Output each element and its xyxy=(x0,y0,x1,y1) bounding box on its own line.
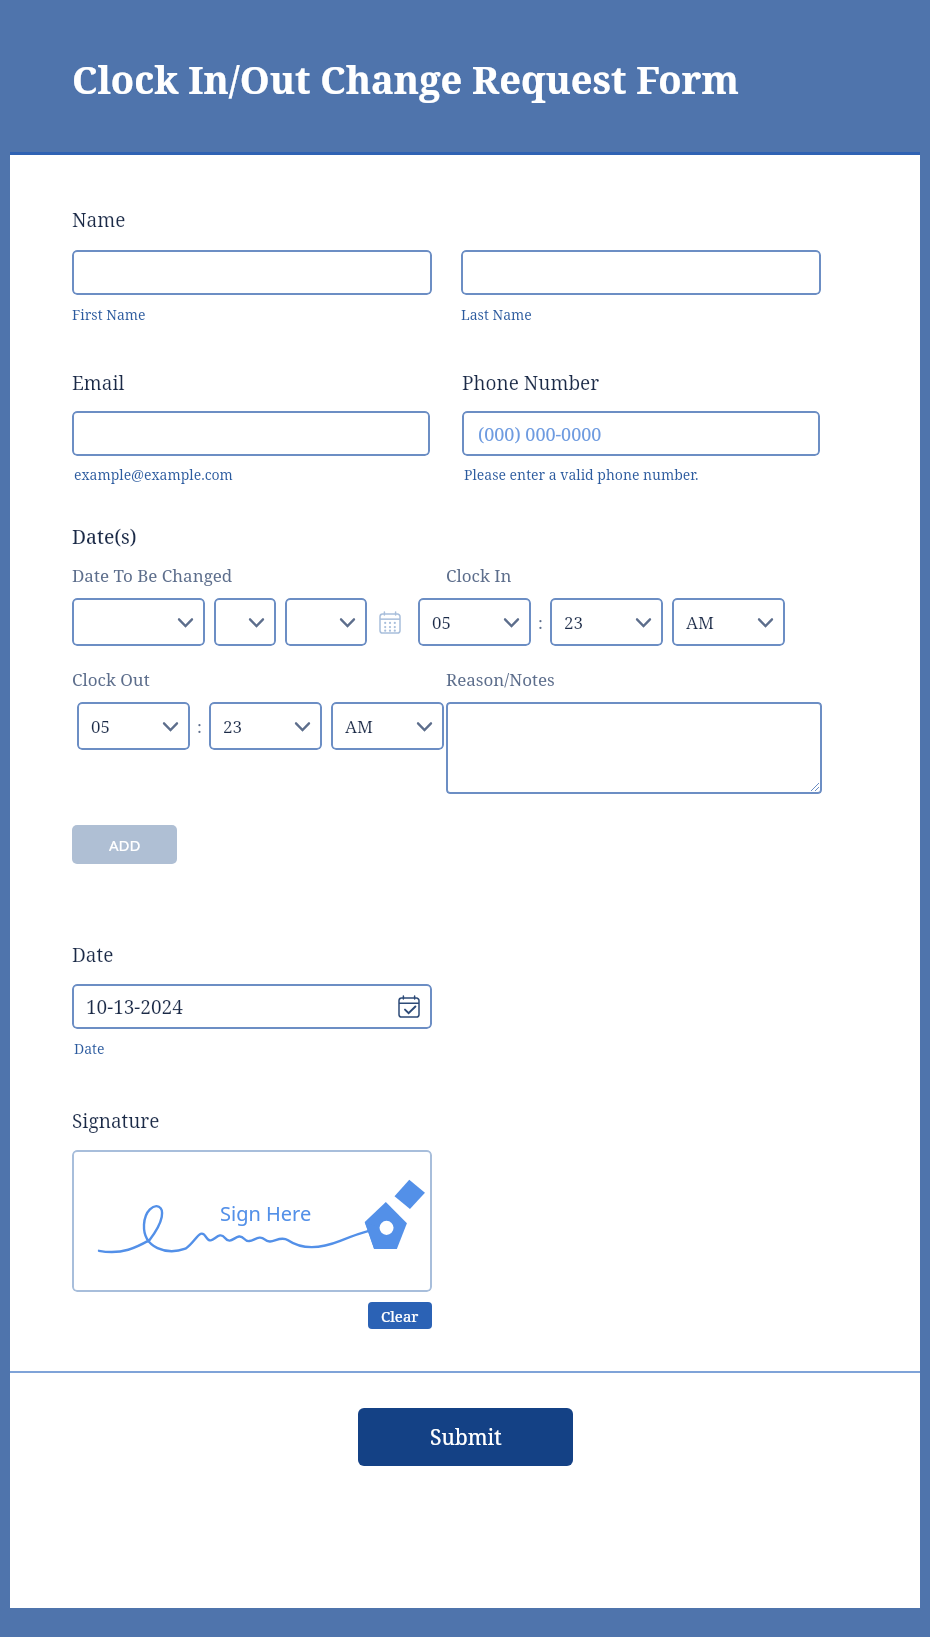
button[interactable] xyxy=(461,250,821,295)
staticText: AM xyxy=(345,715,373,738)
button[interactable]: 23 xyxy=(550,598,663,646)
button[interactable]: Pick date xyxy=(377,609,403,635)
button[interactable] xyxy=(72,411,430,456)
button[interactable]: (000) 000-0000 xyxy=(462,411,820,456)
staticText: 23 xyxy=(564,611,584,634)
staticText: : xyxy=(538,611,543,634)
staticText: Email xyxy=(72,370,125,396)
staticText: Sign Here xyxy=(220,1200,312,1227)
staticText: Date To Be Changed xyxy=(72,564,233,587)
staticText: Phone Number xyxy=(462,370,600,396)
button[interactable]: Submit xyxy=(358,1408,573,1466)
staticText: Date(s) xyxy=(72,524,137,550)
staticText: Clock In xyxy=(446,564,512,587)
button[interactable] xyxy=(72,250,432,295)
staticText: Signature xyxy=(72,1108,160,1134)
button[interactable]: Reason or notes xyxy=(446,702,822,794)
staticText: Clear xyxy=(381,1306,419,1326)
staticText: 23 xyxy=(223,715,243,738)
staticText: Please enter a valid phone number. xyxy=(464,465,699,484)
button[interactable]: 05 xyxy=(77,702,190,750)
button[interactable]: 05 xyxy=(418,598,531,646)
other: Open calendar xyxy=(399,996,419,1017)
staticText: Reason/Notes xyxy=(446,668,555,691)
button[interactable]: ADD xyxy=(72,825,177,864)
staticText: Clock Out xyxy=(72,668,150,691)
staticText: Submit xyxy=(430,1423,502,1452)
staticText: example@example.com xyxy=(74,465,233,484)
staticText: 05 xyxy=(432,611,452,634)
button[interactable]: Select xyxy=(72,598,205,646)
button[interactable]: 10-13-2024 xyxy=(72,984,432,1029)
staticText: 10-13-2024 xyxy=(86,994,183,1020)
staticText: : xyxy=(197,715,202,738)
button[interactable]: AM xyxy=(331,702,444,750)
staticText: Date xyxy=(72,942,114,968)
staticText: Last Name xyxy=(461,305,532,324)
button[interactable]: AM xyxy=(672,598,785,646)
button[interactable]: Select xyxy=(214,598,276,646)
staticText: (000) 000-0000 xyxy=(478,422,602,447)
staticText: ADD xyxy=(109,835,141,855)
button[interactable]: Select xyxy=(285,598,367,646)
staticText: Name xyxy=(72,207,126,233)
button[interactable]: 23 xyxy=(209,702,322,750)
staticText: AM xyxy=(686,611,714,634)
staticText: First Name xyxy=(72,305,146,324)
button[interactable]: Sign Here xyxy=(72,1150,432,1292)
button[interactable]: Clear xyxy=(368,1302,432,1329)
staticText: Clock In/Out Change Request Form xyxy=(72,53,739,105)
staticText: 05 xyxy=(91,715,111,738)
staticText: Date xyxy=(74,1039,105,1058)
